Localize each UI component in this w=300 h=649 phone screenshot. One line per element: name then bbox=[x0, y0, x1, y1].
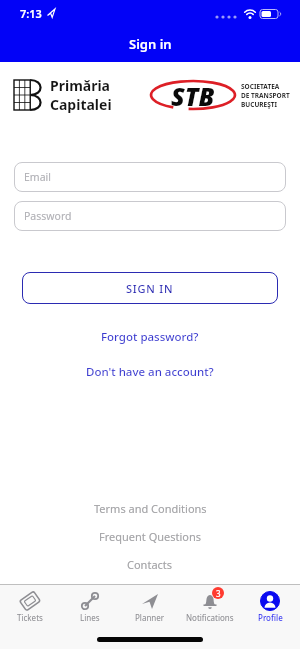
staticText: Notifications bbox=[186, 612, 234, 621]
staticText: BUCUREŞTI bbox=[241, 100, 278, 109]
staticText: 7:13 bbox=[20, 6, 42, 21]
staticText: Lines bbox=[80, 612, 100, 621]
staticText: Forgot password? bbox=[101, 329, 199, 345]
button[interactable]: SIGN IN bbox=[22, 272, 278, 304]
staticText: Primăria bbox=[50, 76, 111, 95]
staticText: Planner bbox=[135, 612, 165, 621]
button[interactable]: Frequent Questions bbox=[0, 529, 300, 544]
button[interactable]: Don't have an account? bbox=[0, 364, 300, 380]
staticText: Terms and Conditions bbox=[94, 501, 207, 516]
staticText: Password bbox=[24, 209, 72, 223]
staticText: Tickets bbox=[17, 612, 43, 621]
button[interactable]: Forgot password? bbox=[0, 329, 300, 345]
staticText: Contacts bbox=[127, 557, 173, 572]
button[interactable]: Contacts bbox=[0, 557, 300, 572]
button[interactable]: Email bbox=[14, 162, 286, 192]
staticText: Profile bbox=[258, 612, 283, 621]
staticText: STB bbox=[171, 79, 215, 111]
button[interactable]: Profile bbox=[240, 590, 300, 621]
staticText: Frequent Questions bbox=[99, 529, 202, 544]
staticText: SOCIETATEA bbox=[241, 82, 280, 91]
staticText: Capitalei bbox=[50, 95, 112, 114]
staticText: DE TRANSPORT bbox=[241, 91, 290, 100]
staticText: SIGN IN bbox=[126, 281, 174, 296]
staticText: Email bbox=[24, 170, 51, 184]
button[interactable]: Lines bbox=[60, 590, 120, 621]
button[interactable]: Planner bbox=[120, 590, 180, 621]
staticText: 3 bbox=[216, 588, 221, 599]
button[interactable]: Password bbox=[14, 201, 286, 231]
button[interactable]: Tickets bbox=[0, 590, 60, 621]
staticText: Don't have an account? bbox=[86, 364, 214, 380]
button[interactable]: 3 bbox=[180, 590, 240, 621]
button[interactable]: Terms and Conditions bbox=[0, 501, 300, 516]
staticText: Sign in bbox=[129, 35, 172, 53]
